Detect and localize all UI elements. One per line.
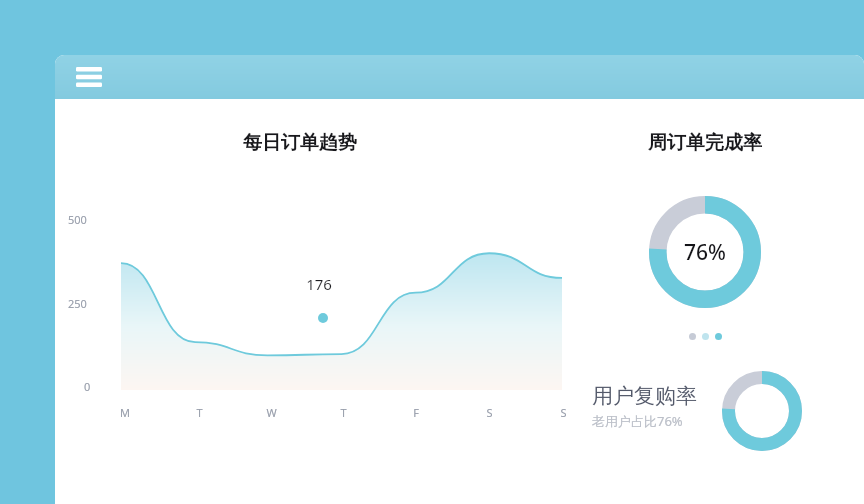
button[interactable]: Page indicator (699, 330, 712, 343)
staticText: 用户复购率 (592, 383, 697, 409)
staticText: S (486, 405, 493, 420)
staticText: 500 (68, 212, 87, 227)
staticText: T (196, 405, 203, 420)
button[interactable]: Weekly completion rate 76 percent (649, 196, 761, 308)
staticText: T (340, 405, 347, 420)
button[interactable]: 176 (282, 264, 356, 303)
staticText: F (413, 405, 419, 420)
staticText: 76% (684, 238, 726, 267)
staticText: 老用户占比76% (592, 412, 683, 430)
staticText: 周订单完成率 (648, 131, 762, 155)
button[interactable]: Page indicator (686, 330, 699, 343)
button[interactable]: Menu (68, 60, 110, 94)
staticText: 250 (68, 296, 87, 311)
staticText: W (266, 405, 277, 420)
button[interactable]: Repurchase rate 76 percent (722, 371, 802, 451)
staticText: 176 (306, 274, 332, 294)
staticText: 每日订单趋势 (243, 131, 357, 155)
staticText: S (560, 405, 567, 420)
staticText: 0 (84, 379, 91, 394)
staticText: M (120, 405, 130, 420)
button[interactable]: Page indicator (712, 330, 725, 343)
